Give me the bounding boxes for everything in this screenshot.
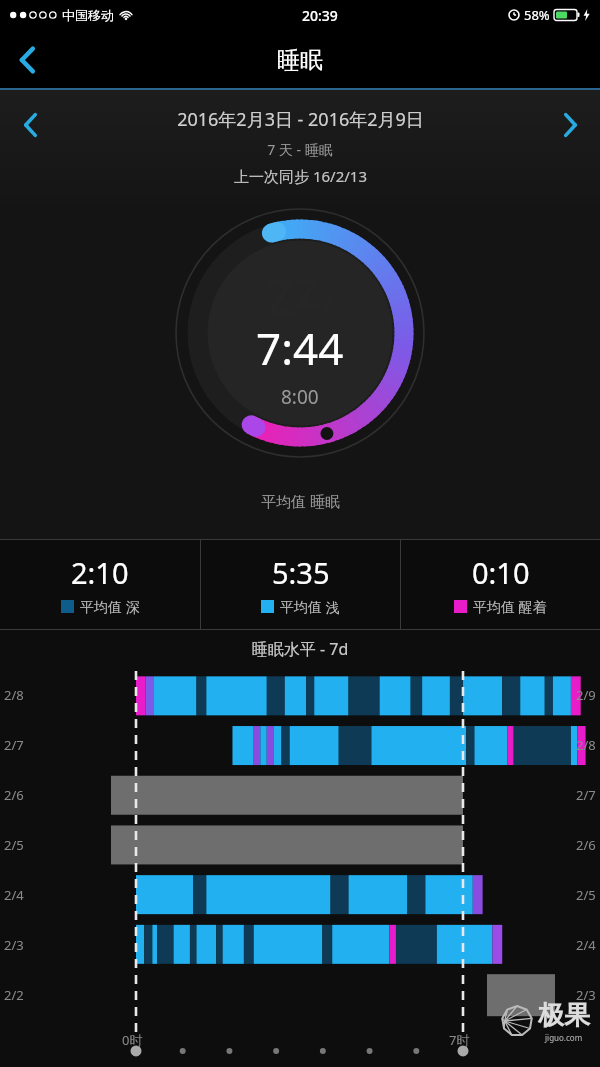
staticText: 2/5 — [576, 886, 596, 904]
staticText: 2/4 — [576, 936, 596, 954]
staticText: 平均值 浅 — [280, 597, 340, 616]
staticText: 2/6 — [576, 836, 596, 854]
button[interactable]: Next week — [540, 98, 600, 152]
staticText: 0时 — [122, 1031, 143, 1049]
staticText: 平均值 醒着 — [473, 597, 547, 616]
staticText: 中国移动 — [62, 7, 114, 23]
staticText: 2/2 — [4, 986, 24, 1004]
staticText: 20:39 — [302, 6, 338, 25]
button[interactable]: Previous week — [0, 98, 60, 152]
staticText: 2016年2月3日 - 2016年2月9日 — [177, 107, 424, 132]
staticText: 7时 — [449, 1031, 470, 1049]
staticText: 2/4 — [4, 886, 24, 904]
staticText: 7 天 - 睡眠 — [267, 140, 333, 159]
staticText: 2/5 — [4, 836, 24, 854]
staticText: 2/3 — [4, 936, 24, 954]
staticText: 2/8 — [4, 686, 24, 704]
staticText: 2/3 — [576, 986, 596, 1004]
staticText: 2:10 — [71, 553, 129, 592]
button[interactable]: 0:10 — [401, 539, 600, 630]
staticText: 2/9 — [576, 686, 596, 704]
staticText: 2/7 — [576, 786, 596, 804]
staticText: 2/7 — [4, 736, 24, 754]
staticText: 2/8 — [576, 736, 596, 754]
staticText: jiguo.com — [545, 1032, 583, 1043]
staticText: 睡眠 — [277, 46, 323, 75]
staticText: 0:10 — [472, 553, 530, 592]
button[interactable]: 2:10 — [0, 539, 200, 630]
staticText: 平均值 深 — [80, 597, 140, 616]
staticText: 58% — [524, 6, 550, 24]
button[interactable]: Back — [0, 32, 56, 88]
staticText: 7:44 — [256, 318, 344, 378]
staticText: 5:35 — [272, 553, 330, 592]
staticText: 2/6 — [4, 786, 24, 804]
staticText: 8:00 — [281, 384, 319, 410]
staticText: 睡眠水平 - 7d — [0, 638, 600, 660]
staticText: 上一次同步 16/2/13 — [234, 166, 367, 186]
staticText: 极果 — [538, 999, 590, 1032]
button[interactable]: 5:35 — [201, 539, 400, 630]
staticText: 平均值 睡眠 — [261, 491, 340, 511]
